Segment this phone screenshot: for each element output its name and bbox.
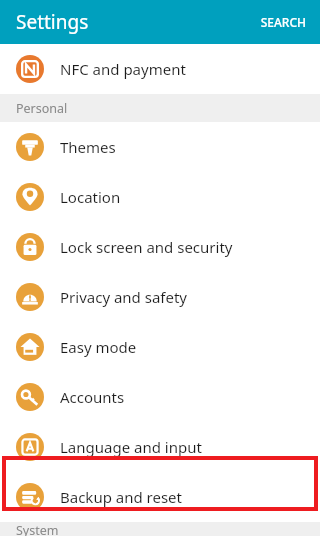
staticText: System <box>16 522 59 536</box>
button[interactable]: Language and input <box>0 422 320 472</box>
button[interactable]: Themes <box>0 122 320 172</box>
button[interactable]: NFC and payment <box>0 44 320 94</box>
staticText: SEARCH <box>260 14 306 30</box>
staticText: Backup and reset <box>60 487 182 507</box>
staticText: Location <box>60 187 121 207</box>
staticText: Settings <box>16 9 89 35</box>
button[interactable]: Lock screen and security <box>0 222 320 272</box>
staticText: Easy mode <box>60 337 137 357</box>
staticText: Lock screen and security <box>60 237 233 257</box>
button[interactable]: SEARCH <box>246 4 320 40</box>
button[interactable]: Easy mode <box>0 322 320 372</box>
button[interactable]: Privacy and safety <box>0 272 320 322</box>
staticText: Privacy and safety <box>60 287 188 307</box>
staticText: Personal <box>16 100 68 117</box>
staticText: Language and input <box>60 437 202 457</box>
button[interactable]: Backup and reset <box>0 472 320 522</box>
button[interactable]: Location <box>0 172 320 222</box>
button[interactable]: Accounts <box>0 372 320 422</box>
staticText: Accounts <box>60 387 125 407</box>
staticText: Themes <box>60 137 116 157</box>
staticText: NFC and payment <box>60 59 186 79</box>
